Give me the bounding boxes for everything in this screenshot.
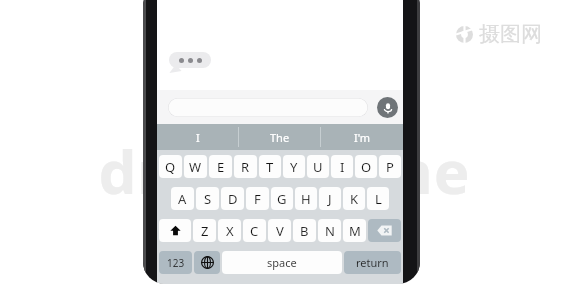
button[interactable]: space <box>222 251 342 274</box>
staticText: S <box>204 190 212 208</box>
button[interactable]: Y <box>283 155 305 178</box>
button[interactable]: G <box>271 187 293 210</box>
staticText: I <box>340 158 345 176</box>
staticText: A <box>178 190 187 208</box>
staticText: F <box>254 190 261 208</box>
staticText: I'm <box>354 130 371 145</box>
staticText: Z <box>201 222 209 240</box>
button[interactable]: R <box>234 155 257 178</box>
staticText: N <box>325 222 335 240</box>
staticText: J <box>328 190 332 208</box>
button[interactable]: K <box>343 187 365 210</box>
button[interactable]: M <box>343 219 366 242</box>
button[interactable]: return <box>344 251 401 274</box>
button[interactable]: W <box>184 155 207 178</box>
staticText: 摄图网 <box>479 21 542 47</box>
staticText: O <box>361 158 372 176</box>
staticText: T <box>266 158 274 176</box>
button[interactable]: 123 <box>159 251 192 274</box>
button[interactable]: Shift <box>159 219 191 242</box>
staticText: W <box>189 158 202 176</box>
staticText: The <box>270 130 290 145</box>
button[interactable]: U <box>307 155 329 178</box>
staticText: M <box>349 222 361 240</box>
staticText: L <box>375 190 382 208</box>
staticText: V <box>276 222 284 240</box>
button[interactable]: X <box>218 219 241 242</box>
staticText: U <box>313 158 323 176</box>
button[interactable]: O <box>355 155 377 178</box>
staticText: X <box>226 222 234 240</box>
button[interactable]: B <box>293 219 316 242</box>
staticText: 123 <box>167 256 185 270</box>
staticText: Q <box>165 158 176 176</box>
staticText: dreamstime <box>0 130 569 212</box>
staticText: G <box>277 190 287 208</box>
staticText: I <box>196 130 200 145</box>
button[interactable]: A <box>171 187 194 210</box>
button[interactable]: L <box>367 187 389 210</box>
staticText: return <box>356 255 389 270</box>
button[interactable]: Z <box>193 219 216 242</box>
button[interactable]: C <box>243 219 266 242</box>
staticText: Y <box>290 158 298 176</box>
staticText: space <box>267 255 297 270</box>
button[interactable]: F <box>246 187 269 210</box>
button[interactable] <box>168 98 368 117</box>
staticText: D <box>228 190 238 208</box>
staticText: E <box>217 158 225 176</box>
staticText: K <box>350 190 359 208</box>
button[interactable]: V <box>268 219 291 242</box>
staticText: P <box>386 158 394 176</box>
button[interactable]: Change keyboard language <box>194 251 220 274</box>
button[interactable]: I <box>157 124 239 150</box>
button[interactable]: Q <box>159 155 182 178</box>
button[interactable]: D <box>221 187 244 210</box>
button[interactable]: N <box>318 219 341 242</box>
button[interactable]: S <box>196 187 219 210</box>
staticText: R <box>241 158 250 176</box>
button[interactable]: T <box>259 155 281 178</box>
button[interactable]: The <box>239 124 321 150</box>
button[interactable]: Delete <box>368 219 401 242</box>
staticText: C <box>250 222 259 240</box>
button[interactable]: H <box>295 187 317 210</box>
button[interactable]: I <box>331 155 353 178</box>
button[interactable]: Voice input <box>377 97 398 118</box>
button[interactable]: E <box>209 155 232 178</box>
button[interactable]: J <box>319 187 341 210</box>
button[interactable]: I'm <box>321 124 403 150</box>
button[interactable]: P <box>379 155 401 178</box>
staticText: H <box>301 190 311 208</box>
staticText: B <box>300 222 309 240</box>
